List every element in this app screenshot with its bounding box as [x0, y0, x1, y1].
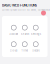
- staticText: Search: [21, 32, 29, 35]
- staticText: Lorem ipsum dolor sit amet, consectetur: [2, 8, 50, 11]
- staticText: Secure: [32, 49, 39, 52]
- staticText: Account: [9, 32, 18, 35]
- staticText: Settings: [31, 32, 41, 35]
- button[interactable]: Account: [8, 25, 19, 35]
- button[interactable]: Timer: [19, 42, 30, 52]
- staticText: Timer: [21, 49, 28, 52]
- button[interactable]: Settings: [30, 25, 41, 35]
- button[interactable]: Secure: [30, 42, 41, 52]
- button[interactable]: Cloud: [8, 42, 19, 52]
- staticText: Cloud: [10, 49, 18, 52]
- staticText: BASIC WEB FUNCTIONS: [2, 3, 37, 7]
- button[interactable]: Search: [19, 25, 30, 35]
